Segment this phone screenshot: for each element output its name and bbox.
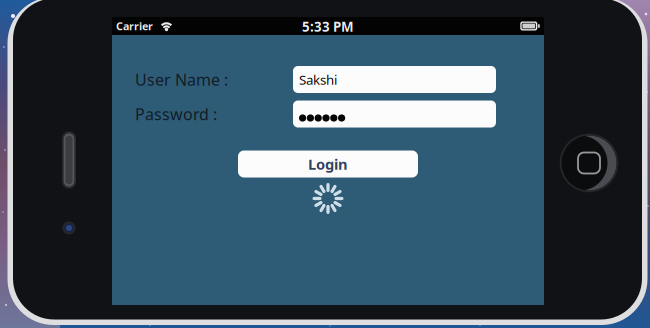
staticText: 5:33 PM [302,18,354,35]
button[interactable]: Login [238,150,418,177]
staticText: Login [308,154,348,174]
staticText: User Name : [135,69,228,90]
button[interactable]: Sakshi [293,66,496,93]
button[interactable] [293,100,496,127]
staticText: Sakshi [299,71,337,88]
staticText: Password : [135,103,217,125]
staticText: Carrier [116,19,153,33]
